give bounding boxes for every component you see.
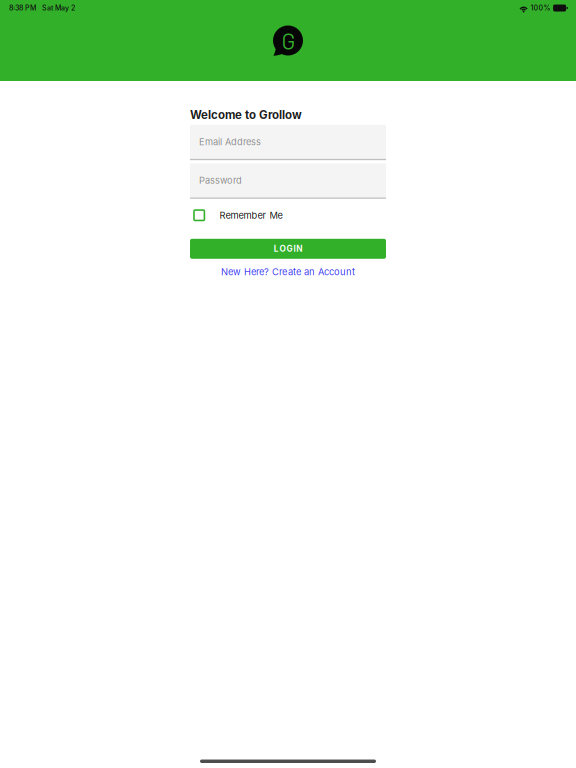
staticText: 100%	[531, 4, 551, 12]
staticText: Sat May 2	[42, 4, 75, 12]
staticText: Welcome to Grollow	[190, 108, 302, 122]
staticText: G	[286, 244, 292, 254]
button[interactable]: New Here? Create an Account	[190, 264, 386, 280]
staticText: N	[296, 244, 302, 254]
staticText: Remember Me	[219, 210, 282, 221]
staticText: Email Address	[199, 136, 261, 147]
staticText: New Here? Create an Account	[221, 266, 355, 277]
staticText: 8:38 PM	[9, 4, 36, 12]
button[interactable]: L	[190, 239, 386, 259]
staticText: O	[280, 244, 286, 254]
staticText: G	[281, 27, 295, 54]
button[interactable]: Remember Me	[190, 207, 386, 223]
staticText: L	[274, 244, 279, 254]
staticText: I	[293, 244, 295, 254]
staticText: Password	[199, 175, 242, 186]
